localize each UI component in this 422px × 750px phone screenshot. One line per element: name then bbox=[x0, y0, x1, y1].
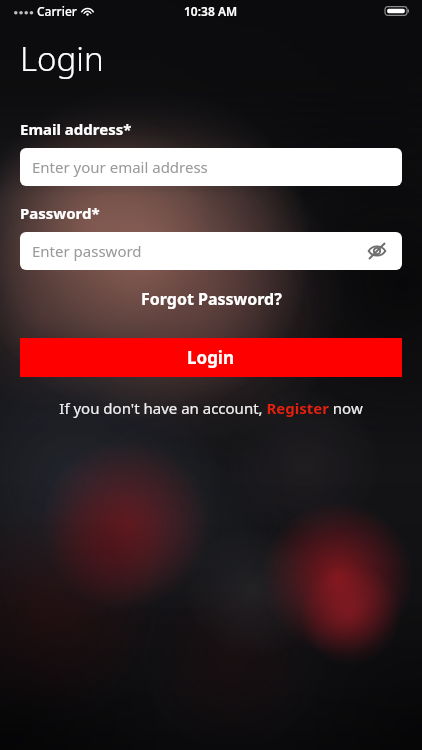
button[interactable]: Show password bbox=[364, 238, 390, 264]
button[interactable]: Enter your email address bbox=[20, 148, 402, 186]
button[interactable]: If you don't have an account, Register n… bbox=[0, 398, 422, 418]
staticText: Carrier bbox=[37, 3, 77, 19]
staticText: Login bbox=[187, 346, 235, 369]
staticText: Login bbox=[20, 36, 104, 81]
staticText: Forgot Password? bbox=[141, 288, 282, 310]
staticText: 10:38 AM bbox=[184, 3, 238, 19]
staticText: Password* bbox=[20, 203, 100, 223]
button[interactable]: Login bbox=[20, 338, 402, 377]
staticText: Enter your email address bbox=[32, 157, 208, 177]
staticText: Enter password bbox=[32, 241, 142, 261]
button[interactable]: Enter password bbox=[20, 232, 402, 270]
staticText: Email address* bbox=[20, 119, 132, 139]
button[interactable]: Forgot Password? bbox=[0, 288, 422, 310]
staticText: If you don't have an account, Register n… bbox=[59, 398, 363, 418]
